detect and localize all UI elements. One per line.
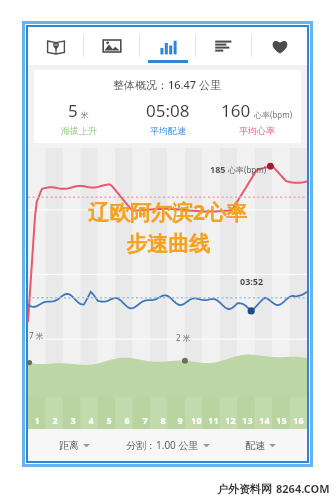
staticText: 11 [208,414,219,426]
staticText: 3 [70,414,76,426]
staticText: 心率(bpm) [254,109,293,120]
staticText: 7 米 [29,330,44,341]
staticText: 8264.COM [276,481,330,496]
staticText: 心率(bpm) [228,164,267,175]
staticText: 8 [160,414,166,426]
button[interactable]: Photos [84,27,139,65]
staticText: 15 [276,414,287,426]
staticText: 2 [52,414,58,426]
staticText: 米 [81,110,89,120]
button[interactable]: Charts [140,27,195,65]
button[interactable]: Heart rate [252,27,307,65]
staticText: 160 [221,99,251,122]
staticText: 14 [259,414,270,426]
staticText: 整体概况：16.47 公里 [113,77,222,92]
button[interactable]: Splits [196,27,251,65]
staticText: 配速 [245,439,265,452]
staticText: 185 [210,163,226,175]
staticText: 5 [68,99,78,122]
staticText: 平均心率 [239,125,275,136]
staticText: 4 [88,414,94,426]
staticText: 16 [293,414,304,426]
staticText: 海拔上升 [61,125,97,136]
staticText: 分割：1.00 公里 [126,438,199,452]
staticText: 12 [225,414,236,426]
staticText: 平均配速 [150,125,186,136]
staticText: 1 [34,414,40,426]
button[interactable]: 整体概况：16.47 公里 [34,70,301,143]
staticText: 6 [124,414,130,426]
staticText: 13 [242,414,253,426]
staticText: 05:08 [146,99,190,122]
button[interactable]: 距离 [55,435,94,456]
staticText: 2 米 [176,332,191,343]
staticText: 9 [177,414,183,426]
button[interactable]: Map [28,27,83,65]
button[interactable]: 分割：1.00 公里 [122,434,214,456]
staticText: 辽欧阿尔滨2心率 [88,198,248,227]
staticText: 03:52 [240,275,264,287]
staticText: 10 [191,414,202,426]
staticText: 户外资料网 [217,482,272,496]
button[interactable]: 配速 [241,435,280,456]
staticText: 步速曲线 [126,231,210,257]
staticText: 5 [106,414,112,426]
staticText: 7 [142,414,148,426]
staticText: 距离 [59,439,79,452]
